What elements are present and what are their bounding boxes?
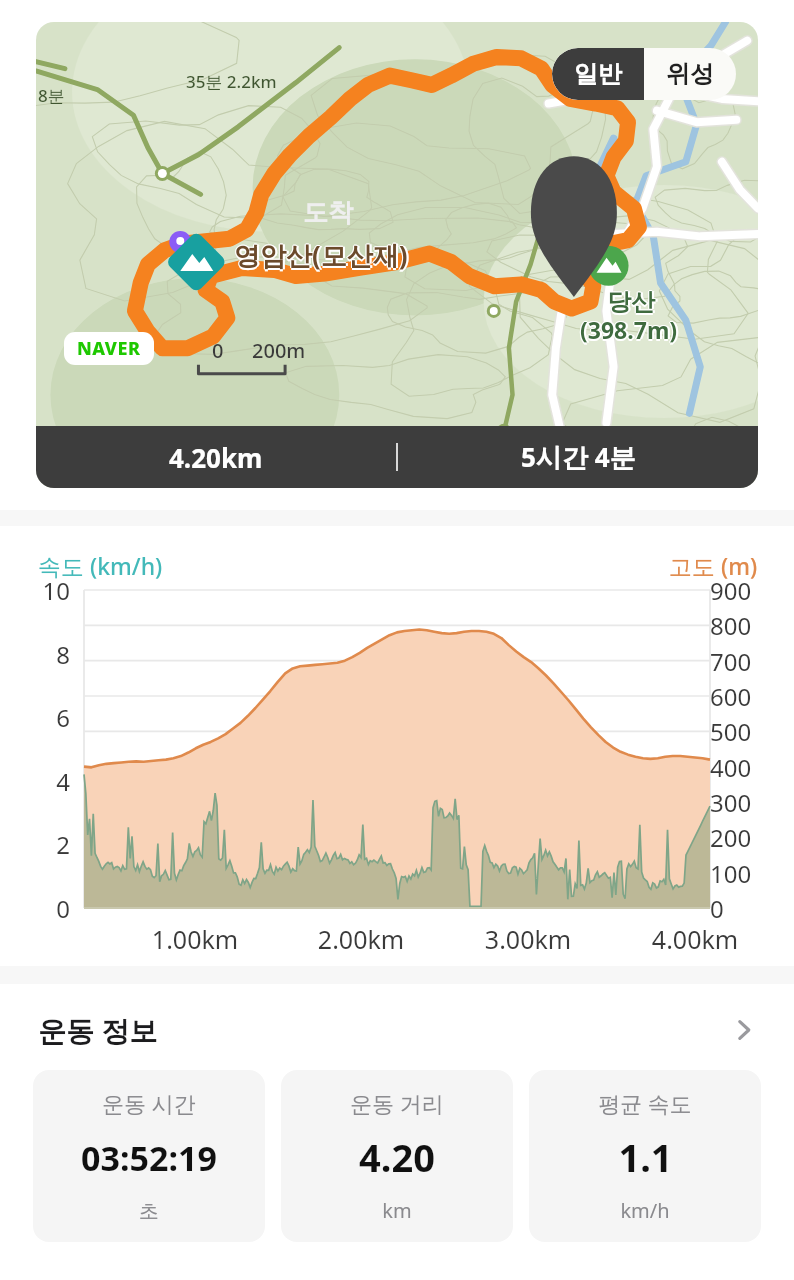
staticText: 1.1 (618, 1131, 673, 1183)
staticText: 1.00km (135, 922, 255, 956)
staticText: 0 (710, 892, 768, 925)
staticText: 900 (710, 574, 768, 607)
staticText: 300 (710, 786, 768, 819)
staticText: 고도 (m) (669, 550, 758, 581)
staticText: (398.7m) (580, 316, 678, 347)
staticText: 초 (139, 1199, 159, 1224)
staticText: 03:52:19 (81, 1135, 217, 1181)
staticText: 속도 (km/h) (38, 550, 163, 581)
staticText: 400 (710, 751, 768, 784)
staticText: 영암산(모산재) (234, 236, 408, 272)
staticText: 영암산(모산재) (233, 237, 407, 273)
staticText: (398.7m) (580, 313, 678, 344)
staticText: 800 (710, 609, 768, 642)
staticText: 일반 (574, 59, 622, 89)
staticText: 8 (40, 638, 70, 671)
staticText: 운동 시간 (102, 1088, 196, 1118)
button[interactable]: NAVER (64, 332, 154, 365)
staticText: 200 (710, 821, 768, 854)
staticText: 영암산(모산재) (234, 239, 408, 275)
staticText: 2.00km (301, 922, 421, 956)
button[interactable]: 일반 (552, 48, 644, 100)
staticText: 5시간 4분 (521, 439, 636, 475)
staticText: 당산 (607, 289, 655, 319)
button[interactable]: 도착 (36, 22, 758, 488)
staticText: 35분 2.2km (186, 70, 277, 93)
staticText: 10 (40, 574, 70, 607)
staticText: 4.20km (169, 440, 263, 475)
other: 운동 정보 더보기 (724, 1010, 764, 1050)
button[interactable]: 운동 정보 (0, 984, 794, 1058)
staticText: km (382, 1197, 412, 1224)
staticText: 0 (40, 892, 70, 925)
staticText: 4.00km (635, 922, 755, 956)
button[interactable]: 운동 거리 (281, 1070, 513, 1242)
staticText: 600 (710, 680, 768, 713)
staticText: 8분 (38, 84, 65, 107)
staticText: NAVER (77, 336, 141, 361)
staticText: 당산 (609, 287, 657, 317)
staticText: 500 (710, 715, 768, 748)
staticText: (398.7m) (579, 314, 677, 345)
staticText: 도착 (303, 197, 353, 228)
staticText: 당산 (607, 286, 655, 316)
button[interactable]: 위성 (644, 48, 736, 100)
staticText: (398.7m) (580, 314, 678, 345)
staticText: 운동 정보 (38, 1011, 158, 1049)
staticText: 당산 (607, 287, 655, 317)
staticText: km/h (620, 1197, 670, 1224)
staticText: 0 (212, 337, 224, 364)
button[interactable]: 평균 속도 (529, 1070, 761, 1242)
staticText: 4.20 (359, 1131, 435, 1183)
staticText: 영암산(모산재) (234, 237, 408, 273)
staticText: 당산 (606, 287, 654, 317)
staticText: 700 (710, 645, 768, 678)
button[interactable]: 운동 시간 (33, 1070, 265, 1242)
staticText: (398.7m) (582, 314, 680, 345)
staticText: 평균 속도 (598, 1088, 692, 1118)
staticText: 200m (252, 337, 306, 364)
staticText: 3.00km (468, 922, 588, 956)
staticText: 2 (40, 828, 70, 861)
staticText: 운동 거리 (350, 1088, 444, 1118)
staticText: 위성 (666, 59, 714, 89)
staticText: 4 (40, 765, 70, 798)
staticText: 영암산(모산재) (236, 237, 410, 273)
staticText: 6 (40, 701, 70, 734)
staticText: 100 (710, 857, 768, 890)
